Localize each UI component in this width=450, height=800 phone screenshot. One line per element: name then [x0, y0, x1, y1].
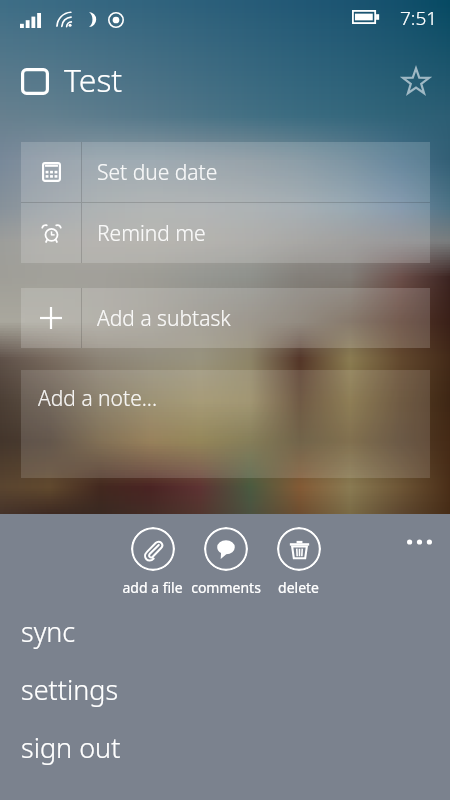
button[interactable]: More options [400, 532, 438, 552]
staticText: comments [191, 578, 261, 597]
staticText: settings [21, 671, 119, 708]
staticText: Add a note... [38, 384, 158, 413]
staticText: Test [64, 58, 123, 102]
button[interactable]: sync [0, 602, 450, 660]
staticText: delete [278, 578, 319, 597]
staticText: Add a subtask [97, 304, 231, 333]
button[interactable]: add a file [116, 527, 189, 597]
button[interactable]: delete [262, 527, 335, 597]
staticText: sync [21, 613, 76, 650]
button[interactable]: Remind me [21, 203, 430, 263]
button[interactable]: Mark complete [21, 58, 123, 104]
button[interactable]: settings [0, 660, 450, 718]
staticText: add a file [122, 578, 183, 597]
staticText: Remind me [97, 219, 206, 248]
staticText: sign out [21, 729, 121, 766]
button[interactable]: sign out [0, 718, 450, 776]
staticText: Set due date [97, 158, 218, 187]
button[interactable]: Add a subtask [21, 288, 430, 348]
other: Mark complete [21, 68, 49, 95]
button[interactable]: Set due date [21, 142, 430, 202]
staticText: 7:51 [400, 5, 438, 31]
button[interactable]: Add a note... [21, 370, 430, 478]
button[interactable]: comments [189, 527, 262, 597]
button[interactable]: Star [394, 58, 438, 104]
